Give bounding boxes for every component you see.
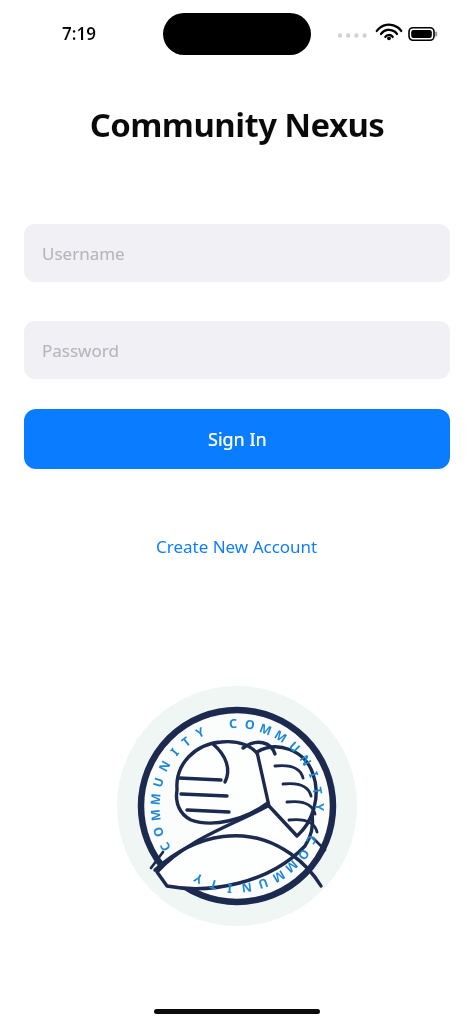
staticText: O <box>149 824 168 839</box>
staticText: 7:19 <box>62 22 96 45</box>
button[interactable]: Username <box>24 224 450 282</box>
staticText: T <box>207 875 219 894</box>
staticText: C <box>302 833 321 848</box>
staticText: U <box>285 738 304 757</box>
staticText: U <box>255 874 270 893</box>
staticText: N <box>240 878 253 897</box>
staticText: N <box>155 757 175 775</box>
staticText: N <box>296 751 316 770</box>
staticText: M <box>269 866 288 887</box>
staticText: C <box>156 838 175 854</box>
staticText: Sign In <box>208 427 267 452</box>
staticText: Username <box>42 242 125 265</box>
button[interactable]: Password <box>24 321 450 379</box>
staticText: T <box>308 786 327 797</box>
staticText: Password <box>42 339 119 362</box>
staticText: U <box>149 775 168 789</box>
staticText: O <box>244 715 256 734</box>
staticText: Create New Account <box>156 535 318 558</box>
staticText: M <box>146 808 165 822</box>
button[interactable]: Sign In <box>24 409 450 469</box>
staticText: C <box>229 715 238 732</box>
staticText: I <box>167 744 183 759</box>
staticText: O <box>294 846 313 864</box>
staticText: M <box>281 856 302 877</box>
staticText: T <box>178 732 195 750</box>
staticText: M <box>257 719 274 739</box>
staticText: I <box>226 880 233 897</box>
staticText: I <box>305 769 322 780</box>
staticText: Community Nexus <box>0 102 474 147</box>
button[interactable]: Create New Account <box>0 529 474 563</box>
staticText: Y <box>193 723 208 742</box>
other: Community Nexus logo <box>117 686 357 926</box>
other: Status icons <box>337 24 437 44</box>
staticText: Y <box>191 869 206 888</box>
staticText: M <box>271 726 290 747</box>
staticText: M <box>146 792 164 806</box>
staticText: Y <box>311 803 328 811</box>
